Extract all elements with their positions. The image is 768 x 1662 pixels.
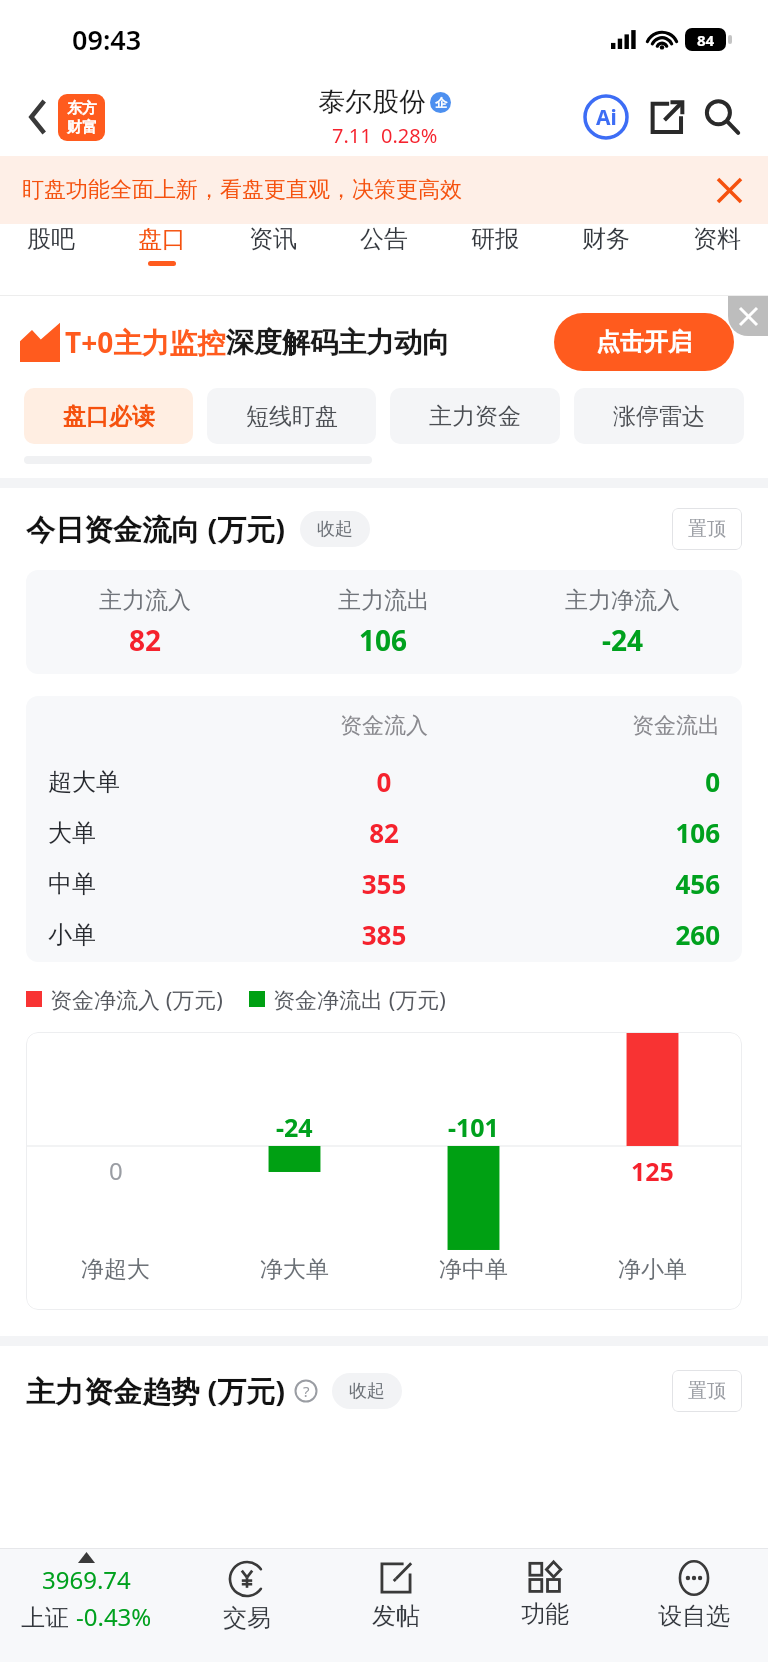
button[interactable]: 盯盘功能全面上新，看盘更直观，决策更高效 xyxy=(0,156,768,224)
staticText: 资金流出 xyxy=(503,712,720,740)
staticText: 主力资金 xyxy=(429,402,521,431)
staticText: 82 xyxy=(129,621,162,659)
staticText: 发帖 xyxy=(372,1601,420,1631)
staticText: T+0主力监控 xyxy=(65,323,226,361)
staticText: 上证 xyxy=(21,1600,76,1633)
staticText: 置顶 xyxy=(688,1379,726,1403)
staticText: 股吧 xyxy=(27,224,75,254)
button[interactable]: Close banner xyxy=(706,167,752,213)
staticText: 收起 xyxy=(349,1380,385,1403)
staticText: 深度解码主力动向 xyxy=(226,325,450,360)
button[interactable]: Post xyxy=(321,1549,470,1662)
staticText: 研报 xyxy=(471,224,519,254)
staticText: 小单 xyxy=(48,920,265,950)
staticText: 资料 xyxy=(693,224,741,254)
button[interactable]: Back xyxy=(14,93,62,141)
staticText: 125 xyxy=(631,1154,674,1188)
button[interactable]: 收起 xyxy=(332,1373,402,1409)
staticText: 今日资金流向 (万元) xyxy=(26,509,286,549)
staticText: -24 xyxy=(276,1110,313,1144)
staticText: 0 xyxy=(503,764,720,799)
staticText: 超大单 xyxy=(48,767,265,797)
staticText: -101 xyxy=(448,1110,499,1144)
staticText: 盘口必读 xyxy=(63,402,155,431)
button[interactable]: 研报 xyxy=(471,224,519,266)
button[interactable]: Help xyxy=(292,1377,320,1405)
staticText: 功能 xyxy=(521,1599,569,1629)
staticText: 收起 xyxy=(317,518,353,541)
button[interactable]: 盘口必读 xyxy=(24,388,193,444)
staticText: 资金净流出 (万元) xyxy=(273,984,446,1014)
button[interactable]: 置顶 xyxy=(672,508,742,550)
button[interactable]: 短线盯盘 xyxy=(207,388,376,444)
button[interactable]: 置顶 xyxy=(672,1370,742,1412)
button[interactable]: 中单 xyxy=(48,858,720,909)
staticText: 106 xyxy=(359,621,408,659)
staticText: 456 xyxy=(503,866,720,901)
button[interactable]: 盘口 xyxy=(138,224,186,266)
staticText: 主力资金趋势 (万元) xyxy=(26,1371,286,1411)
button[interactable]: 涨停雷达 xyxy=(574,388,744,444)
staticText: 3969.74 xyxy=(42,1563,131,1596)
staticText: 0 xyxy=(265,764,503,799)
button[interactable]: East Money home xyxy=(58,94,105,141)
staticText: 84 xyxy=(697,30,715,50)
staticText: 设自选 xyxy=(658,1601,730,1631)
staticText: 385 xyxy=(265,917,503,952)
button[interactable]: Search xyxy=(696,91,748,143)
button[interactable]: 股吧 xyxy=(27,224,75,266)
button[interactable]: AI assistant xyxy=(580,91,632,143)
staticText: 355 xyxy=(265,866,503,901)
staticText: 净大单 xyxy=(205,1255,384,1284)
staticText: 106 xyxy=(503,815,720,850)
button[interactable]: Features xyxy=(470,1549,619,1662)
button[interactable]: 公告 xyxy=(360,224,408,266)
staticText: 企 xyxy=(435,95,447,110)
button[interactable]: 资讯 xyxy=(249,224,297,266)
button[interactable]: 点击开启 xyxy=(554,313,734,371)
button[interactable]: Close promo xyxy=(728,296,768,336)
button[interactable]: 主力流入 xyxy=(26,570,264,674)
staticText: 净小单 xyxy=(563,1255,742,1284)
staticText: 主力流出 xyxy=(338,586,430,615)
staticText: 主力流入 xyxy=(99,586,191,615)
staticText: 泰尔股份 xyxy=(318,85,426,119)
button[interactable]: 主力净流入 xyxy=(503,570,742,674)
staticText: 09:43 xyxy=(72,21,142,58)
staticText: 置顶 xyxy=(688,517,726,541)
staticText: 资讯 xyxy=(249,224,297,254)
button[interactable]: Trade xyxy=(172,1549,321,1662)
button[interactable]: 收起 xyxy=(300,511,370,547)
staticText: 82 xyxy=(265,815,503,850)
staticText: 资金净流入 (万元) xyxy=(50,984,223,1014)
staticText: 盯盘功能全面上新，看盘更直观，决策更高效 xyxy=(22,176,462,204)
staticText: 短线盯盘 xyxy=(246,402,338,431)
staticText: Ai xyxy=(596,103,617,132)
button[interactable]: 3969.74 xyxy=(0,1549,172,1662)
staticText: 260 xyxy=(503,917,720,952)
staticText: -24 xyxy=(602,621,643,659)
button[interactable]: 主力流出 xyxy=(264,570,503,674)
staticText: 东方 xyxy=(67,99,97,118)
staticText: 净中单 xyxy=(384,1255,563,1284)
staticText: 中单 xyxy=(48,869,265,899)
button[interactable]: Share xyxy=(640,91,692,143)
staticText: 净超大 xyxy=(26,1255,205,1284)
button[interactable]: 小单 xyxy=(48,909,720,960)
button[interactable]: Watchlist xyxy=(619,1549,768,1662)
staticText: 资金流入 xyxy=(265,712,503,740)
button[interactable]: 财务 xyxy=(582,224,630,266)
staticText: 0 xyxy=(109,1154,123,1187)
button[interactable]: 资料 xyxy=(693,224,741,266)
staticText: 涨停雷达 xyxy=(613,402,705,431)
button[interactable]: 主力资金 xyxy=(390,388,560,444)
staticText: 财务 xyxy=(582,224,630,254)
staticText: 7.11 xyxy=(332,122,372,149)
staticText: 交易 xyxy=(223,1603,271,1633)
button[interactable]: 大单 xyxy=(48,807,720,858)
staticText: 主力净流入 xyxy=(565,586,680,615)
button[interactable]: 超大单 xyxy=(48,756,720,807)
staticText: 大单 xyxy=(48,818,265,848)
staticText: 点击开启 xyxy=(596,327,692,357)
staticText: 盘口 xyxy=(138,224,186,254)
